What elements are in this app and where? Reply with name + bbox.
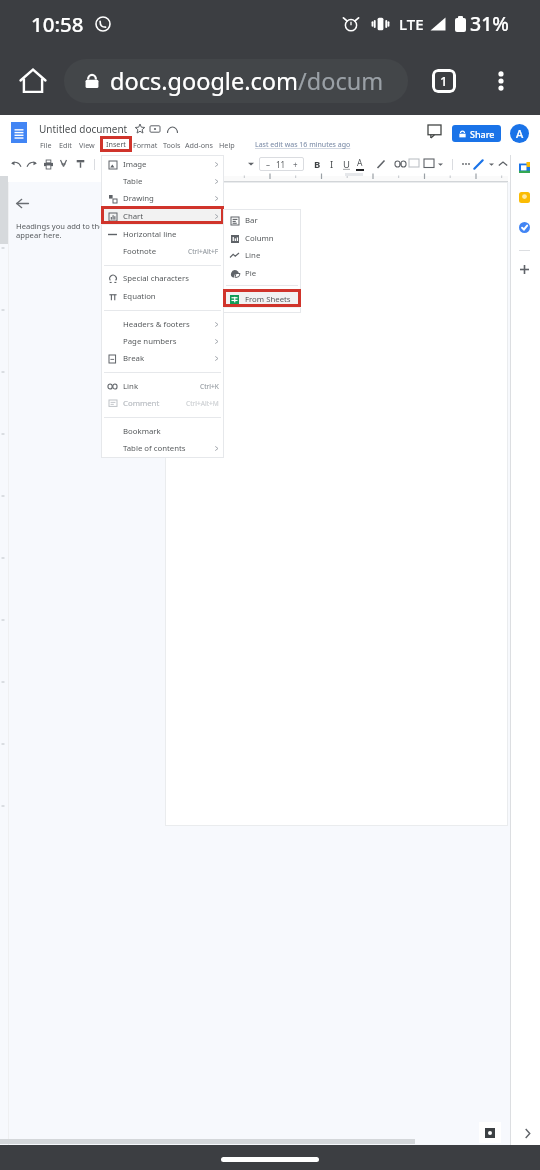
staticText: File (40, 140, 52, 150)
button[interactable]: Add comment (406, 156, 422, 172)
button[interactable]: Footnote (101, 242, 224, 260)
staticText: B (314, 158, 321, 171)
button[interactable]: Drawing (101, 189, 224, 207)
button[interactable]: Special characters (101, 269, 224, 287)
staticText: – (266, 159, 270, 170)
staticText: Footnote (123, 246, 157, 257)
button[interactable]: From Sheets (223, 290, 301, 308)
button[interactable]: Close document outline (12, 193, 32, 213)
staticText: Bar (245, 215, 258, 226)
button[interactable]: Insert link (392, 156, 408, 172)
button[interactable]: Print (40, 156, 56, 172)
staticText: A (357, 157, 363, 169)
button[interactable]: Spelling (56, 156, 72, 172)
staticText: docs.google.com (110, 65, 298, 97)
button[interactable]: Undo (8, 156, 24, 172)
button[interactable]: Add-ons (185, 137, 213, 152)
button[interactable]: Table of contents (101, 439, 224, 457)
button[interactable]: Help (219, 137, 235, 152)
button[interactable]: Link (101, 377, 224, 395)
button[interactable]: Image (101, 155, 224, 173)
button[interactable]: Share (452, 125, 501, 142)
button[interactable]: Move (150, 124, 160, 134)
button[interactable]: Pie (223, 264, 301, 282)
staticText: View (79, 140, 95, 150)
button[interactable]: File (40, 137, 52, 152)
button[interactable]: Bar (223, 211, 301, 229)
button[interactable]: Equation (101, 287, 224, 305)
button[interactable]: Hide menus (495, 156, 511, 172)
button[interactable]: Comment (101, 394, 224, 412)
button[interactable]: Styles (243, 156, 259, 172)
staticText: Format (133, 140, 158, 150)
button[interactable]: Page numbers (101, 332, 224, 350)
button[interactable]: Home (10, 58, 56, 104)
button[interactable]: Highlight (373, 156, 389, 172)
staticText: /docum (298, 65, 384, 97)
button[interactable]: More (458, 156, 474, 172)
button[interactable]: Saved to Drive (167, 126, 178, 134)
button[interactable]: Insert (100, 136, 132, 152)
button[interactable]: Editing mode (470, 156, 486, 172)
button[interactable]: Italic (324, 156, 340, 172)
staticText: Comment (123, 398, 160, 409)
staticText: Ctrl+Alt+F (188, 247, 219, 256)
staticText: Last edit was 16 minutes ago (255, 140, 351, 150)
staticText: Ctrl+K (200, 382, 219, 391)
staticText: Equation (123, 291, 156, 302)
button[interactable]: Keep (519, 192, 530, 203)
staticText: Tools (163, 140, 181, 150)
button[interactable]: Headers & footers (101, 315, 224, 333)
button[interactable]: Comments (428, 125, 441, 138)
staticText: Insert (106, 139, 126, 149)
button[interactable]: Chart (101, 207, 224, 225)
button[interactable]: Format (133, 137, 158, 152)
staticText: Column (245, 233, 274, 244)
button[interactable]: Tasks (519, 222, 530, 233)
button[interactable]: Horizontal line (101, 225, 224, 243)
button[interactable]: Calendar (519, 162, 530, 173)
button[interactable]: Line (223, 246, 301, 264)
button[interactable]: Get add-ons (519, 264, 530, 275)
staticText: 31% (470, 10, 509, 37)
staticText: A (516, 126, 524, 141)
button[interactable]: Bold (309, 156, 325, 172)
button[interactable]: Tabs (424, 61, 464, 101)
button[interactable]: Explore (479, 1122, 501, 1143)
staticText: Horizontal line (123, 229, 177, 240)
button[interactable]: Redo (24, 156, 40, 172)
button[interactable]: Bookmark (101, 422, 224, 440)
staticText: Add-ons (185, 140, 213, 150)
staticText: Line (245, 250, 261, 261)
button[interactable]: Star (135, 124, 145, 134)
button[interactable]: Text colour (352, 156, 368, 172)
button[interactable]: Table (101, 172, 224, 190)
staticText: appear here. (16, 230, 100, 240)
button[interactable]: Image options (432, 156, 448, 172)
staticText: 11 (276, 159, 286, 170)
button[interactable]: Underline (338, 156, 354, 172)
staticText: I (330, 158, 334, 171)
button[interactable]: Account (510, 124, 529, 143)
button[interactable]: Column (223, 229, 301, 247)
staticText: 10:58 (31, 10, 84, 38)
button[interactable]: Break (101, 349, 224, 367)
button[interactable]: Tools (163, 137, 181, 152)
button[interactable]: Edit (59, 137, 72, 152)
button[interactable]: View (79, 137, 95, 152)
staticText: Share (470, 128, 495, 140)
button[interactable]: Mode options (483, 156, 499, 172)
staticText: Help (219, 140, 235, 150)
button[interactable]: docs.google.com (64, 59, 408, 103)
button[interactable]: More options (481, 61, 521, 101)
button[interactable]: Paint format (72, 156, 88, 172)
staticText: LTE (399, 14, 424, 34)
staticText: Headers & footers (123, 319, 190, 330)
staticText: Table (123, 176, 143, 187)
staticText: Break (123, 353, 145, 364)
staticText: Ctrl+Alt+M (186, 399, 219, 408)
button[interactable]: Insert image (421, 156, 437, 172)
button[interactable]: Expand (518, 1124, 536, 1142)
staticText: From Sheets (245, 294, 291, 305)
staticText: U (343, 158, 350, 171)
